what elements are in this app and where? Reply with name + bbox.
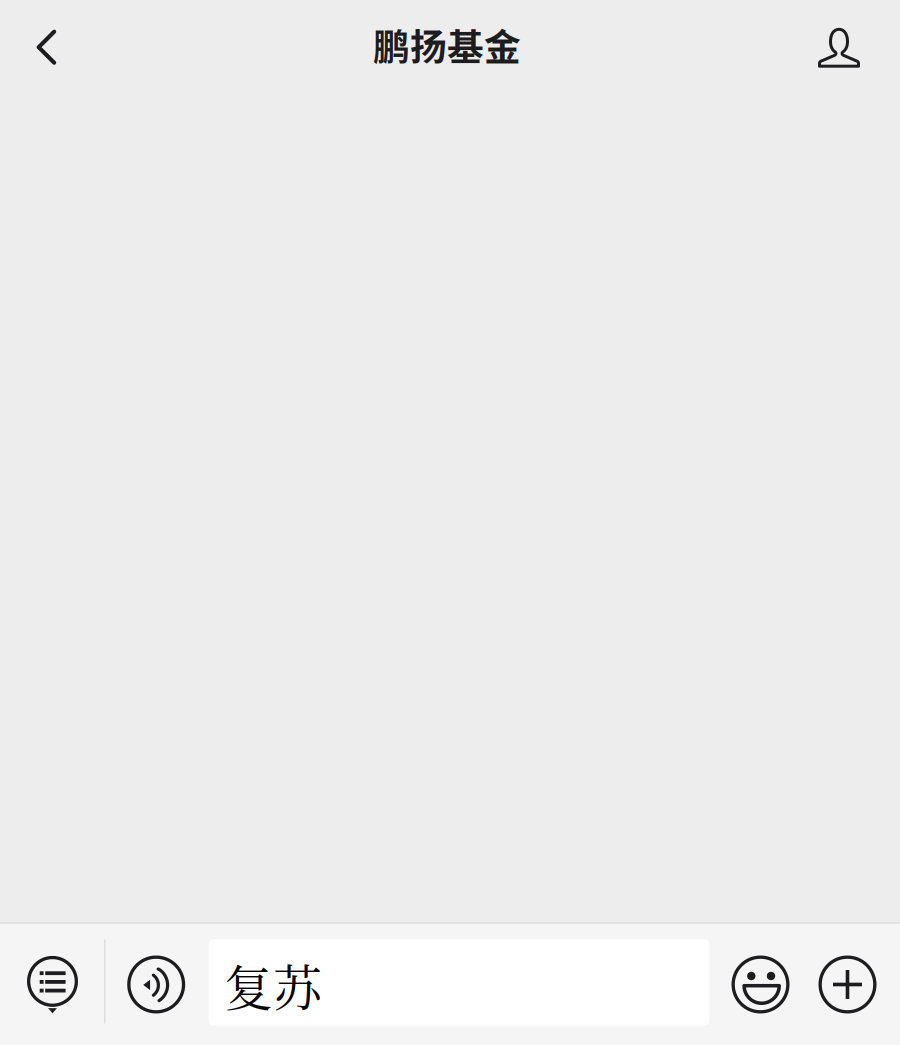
button[interactable]: More xyxy=(802,923,892,1045)
button[interactable]: Back xyxy=(7,2,85,92)
staticText: 鹏扬基金 xyxy=(373,18,521,71)
button[interactable]: Voice message xyxy=(108,923,204,1045)
button[interactable]: Menu xyxy=(4,924,100,1045)
button[interactable]: Emoji xyxy=(715,923,805,1045)
staticText: 复苏 xyxy=(224,950,322,1020)
button[interactable]: Contact info xyxy=(800,3,878,93)
button[interactable]: 复苏 xyxy=(209,939,709,1026)
